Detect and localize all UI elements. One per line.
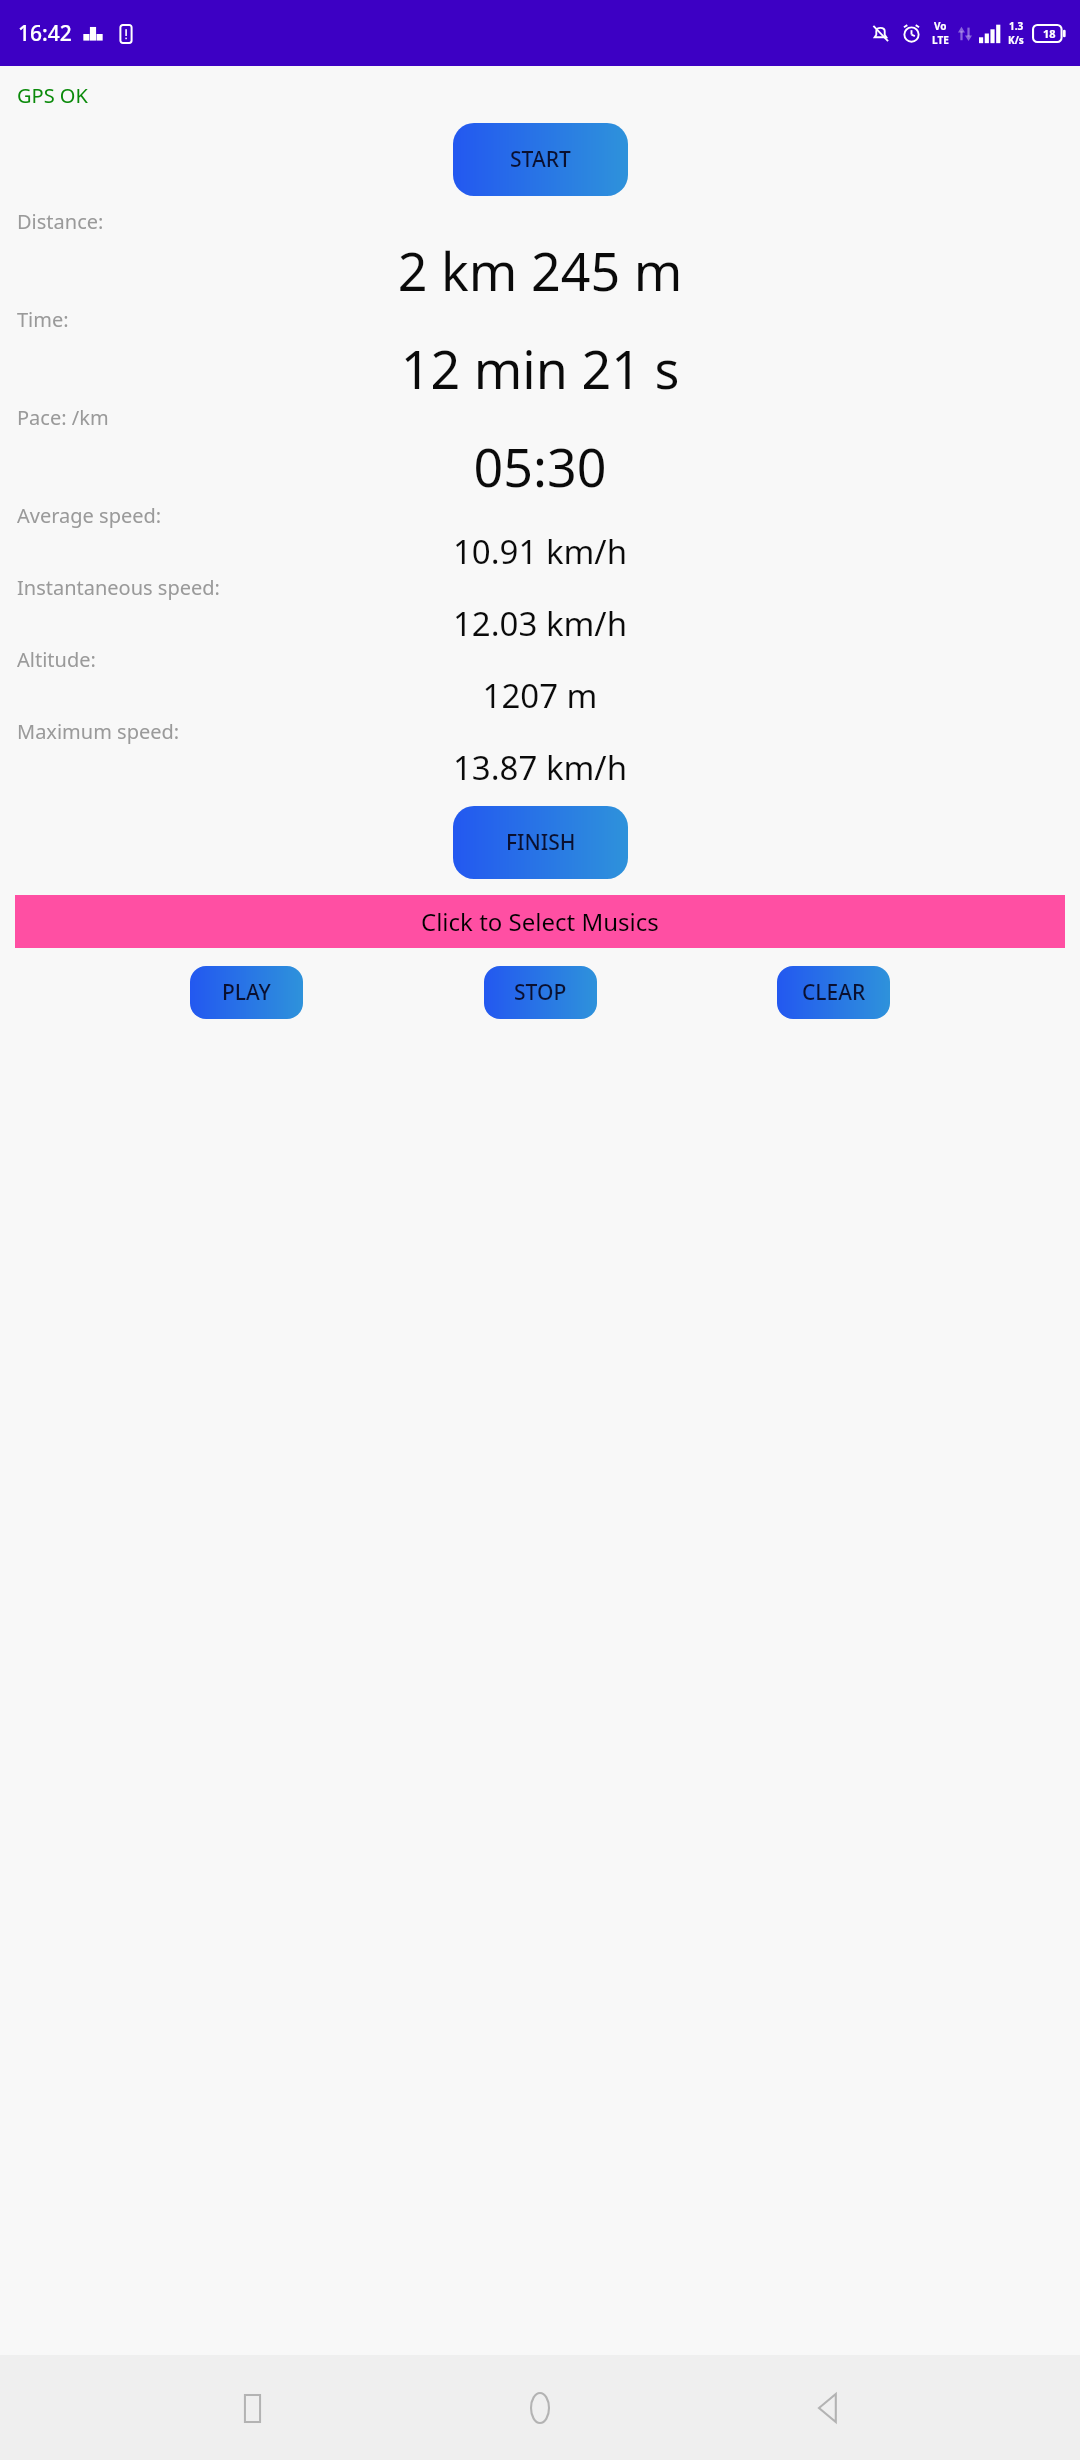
- staticText: STOP: [514, 978, 567, 1007]
- staticText: 16:42: [18, 19, 72, 48]
- staticText: Maximum speed:: [17, 718, 180, 745]
- staticText: Distance:: [17, 208, 104, 235]
- staticText: 05:30: [0, 431, 1080, 502]
- button[interactable]: START: [453, 123, 628, 196]
- staticText: 10.91 km/h: [0, 529, 1080, 574]
- button[interactable]: PLAY: [190, 966, 303, 1019]
- staticText: START: [510, 145, 571, 174]
- button[interactable]: Click to Select Musics: [15, 895, 1065, 948]
- staticText: 1207 m: [0, 673, 1080, 718]
- staticText: 1.3: [1009, 19, 1024, 33]
- button[interactable]: CLEAR: [777, 966, 890, 1019]
- staticText: CLEAR: [802, 978, 866, 1007]
- staticText: 18: [1043, 26, 1056, 41]
- button[interactable]: Recent apps: [216, 2372, 288, 2444]
- staticText: 12 min 21 s: [0, 333, 1080, 404]
- staticText: Average speed:: [17, 502, 162, 529]
- staticText: Altitude:: [17, 646, 96, 673]
- staticText: 13.87 km/h: [0, 745, 1080, 790]
- staticText: K/s: [1008, 33, 1024, 47]
- button[interactable]: FINISH: [453, 806, 628, 879]
- staticText: 12.03 km/h: [0, 601, 1080, 646]
- staticText: Vo: [934, 19, 947, 33]
- staticText: Time:: [17, 306, 69, 333]
- staticText: GPS OK: [17, 82, 88, 109]
- staticText: PLAY: [222, 978, 271, 1007]
- staticText: Click to Select Musics: [421, 905, 659, 938]
- staticText: 2 km 245 m: [0, 235, 1080, 306]
- staticText: LTE: [932, 33, 949, 47]
- button[interactable]: Home: [504, 2372, 576, 2444]
- staticText: FINISH: [506, 828, 576, 857]
- button[interactable]: Back: [792, 2372, 864, 2444]
- button[interactable]: STOP: [484, 966, 597, 1019]
- staticText: Instantaneous speed:: [17, 574, 220, 601]
- staticText: Pace: /km: [17, 404, 109, 431]
